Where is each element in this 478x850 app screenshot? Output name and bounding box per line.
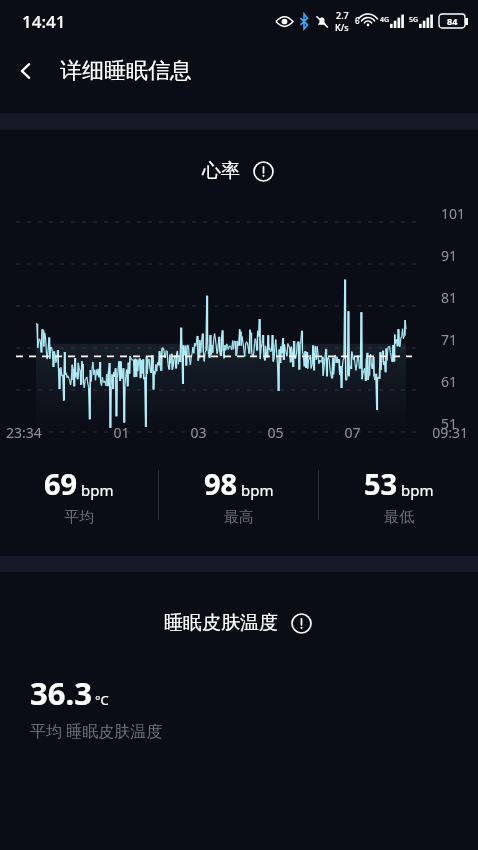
- staticText: bpm: [401, 480, 434, 500]
- button[interactable]: 53: [319, 464, 478, 526]
- staticText: 91: [441, 246, 458, 265]
- staticText: 睡眠皮肤温度: [164, 611, 278, 635]
- staticText: bpm: [241, 480, 274, 500]
- button[interactable]: 69: [0, 464, 158, 526]
- staticText: 详细睡眠信息: [60, 57, 192, 85]
- staticText: K/s: [335, 21, 349, 33]
- staticText: 69: [44, 464, 78, 503]
- staticText: 101: [441, 204, 466, 223]
- staticText: 最高: [224, 508, 254, 526]
- staticText: 14:41: [22, 10, 66, 33]
- staticText: 5G: [409, 15, 419, 25]
- button[interactable]: 98: [159, 464, 318, 526]
- staticText: 84: [447, 15, 458, 27]
- staticText: 01: [83, 423, 160, 442]
- button[interactable]: 说明: [288, 610, 314, 636]
- staticText: 05: [237, 423, 314, 442]
- staticText: °C: [95, 691, 109, 709]
- staticText: bpm: [81, 480, 114, 500]
- staticText: 71: [441, 330, 458, 349]
- staticText: 09:31: [391, 423, 468, 442]
- staticText: 最低: [384, 508, 414, 526]
- staticText: 平均 睡眠皮肤温度: [30, 720, 163, 742]
- staticText: 心率: [202, 159, 240, 183]
- staticText: 23:34: [6, 423, 83, 442]
- staticText: 36.3: [30, 672, 92, 714]
- staticText: 4G: [380, 15, 390, 25]
- staticText: 53: [364, 464, 398, 503]
- staticText: 6: [355, 15, 360, 26]
- staticText: 2.7: [336, 9, 349, 21]
- staticText: 07: [314, 423, 391, 442]
- staticText: 03: [160, 423, 237, 442]
- button[interactable]: 返回: [0, 45, 52, 97]
- button[interactable]: 说明: [250, 158, 276, 184]
- staticText: 平均: [64, 508, 94, 526]
- staticText: 51: [441, 414, 458, 433]
- staticText: 98: [204, 464, 238, 503]
- staticText: 81: [441, 288, 458, 307]
- staticText: 61: [441, 372, 458, 391]
